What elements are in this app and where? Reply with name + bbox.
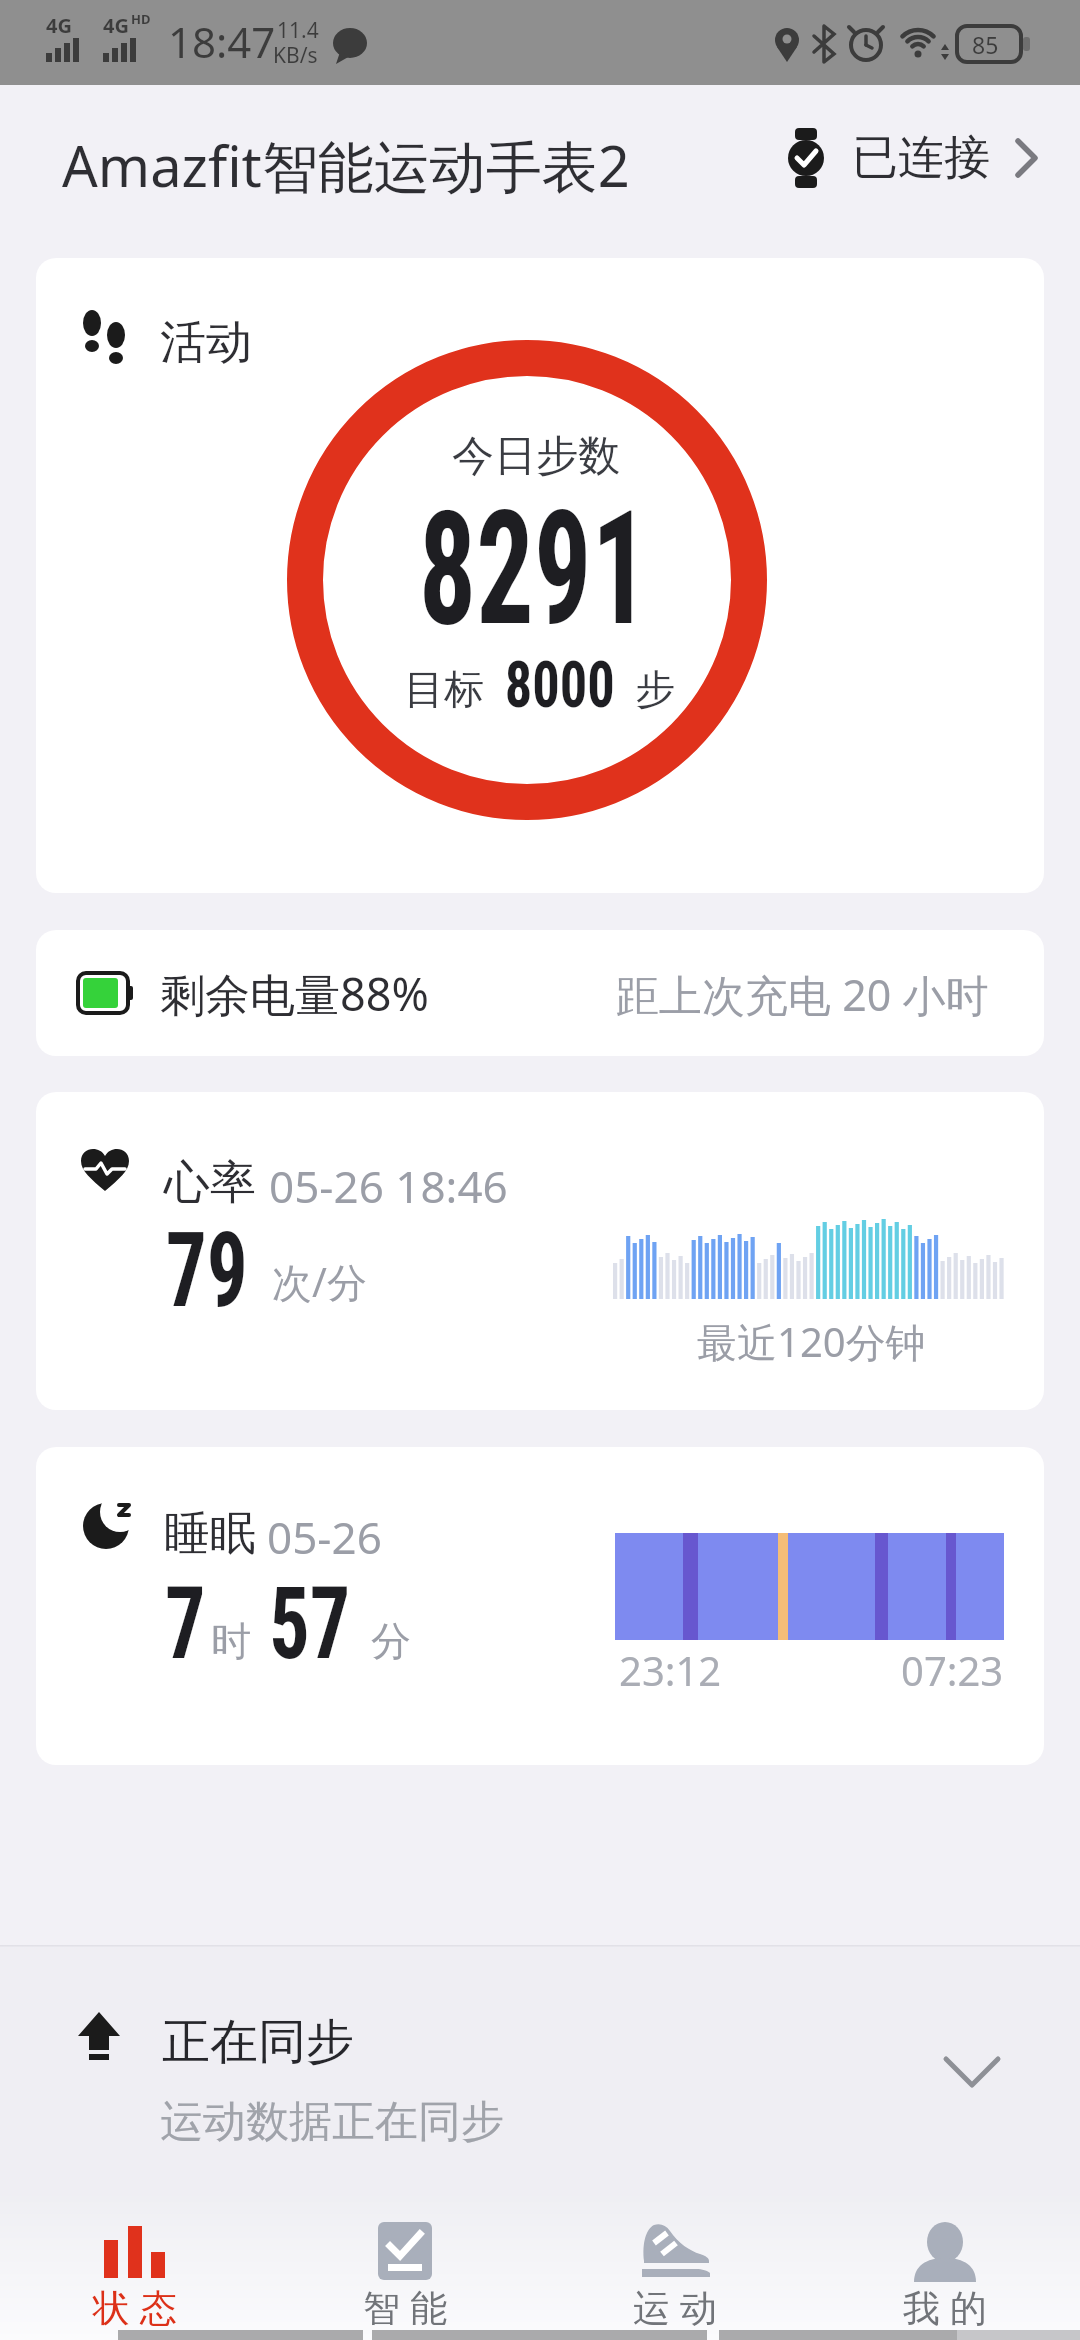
staticText: 次/分 <box>272 1254 367 1309</box>
button[interactable]: 睡眠 <box>36 1447 1044 1765</box>
staticText: 79 <box>166 1210 248 1332</box>
staticText: 运动 <box>628 2285 722 2332</box>
staticText: 分 <box>371 1616 411 1666</box>
staticText: 步 <box>625 660 676 715</box>
button[interactable]: 运动 <box>540 2196 810 2340</box>
button[interactable]: 已连接 <box>786 128 1040 188</box>
staticText: 状态 <box>88 2285 182 2332</box>
staticText: HD <box>131 10 151 28</box>
staticText: 8000 <box>505 648 615 723</box>
staticText: 今日步数 <box>452 430 620 483</box>
staticText: 活动 <box>160 314 252 372</box>
staticText: 4G <box>103 12 129 39</box>
button[interactable]: 剩余电量88% <box>36 930 1044 1056</box>
button[interactable]: 活动 <box>36 258 1044 893</box>
staticText: 时 <box>211 1616 251 1666</box>
staticText: 11.4 <box>277 16 319 45</box>
staticText: 运动数据正在同步 <box>160 2095 504 2149</box>
staticText: 07:23 <box>901 1643 1004 1697</box>
staticText: 睡眠 <box>164 1505 256 1563</box>
staticText: 05-26 18:46 <box>269 1156 508 1216</box>
staticText: 7 <box>165 1565 206 1682</box>
staticText: 智能 <box>358 2285 452 2332</box>
staticText: Amazfit智能运动手表2 <box>62 127 630 203</box>
staticText: 距上次充电 20 小时 <box>616 965 989 1024</box>
button[interactable]: 我的 <box>810 2196 1080 2340</box>
button[interactable]: 状态 <box>0 2196 270 2340</box>
button[interactable]: 智能 <box>270 2196 540 2340</box>
staticText: 57 <box>269 1565 351 1682</box>
staticText: 23:12 <box>619 1643 722 1697</box>
staticText: 目标 <box>404 660 495 715</box>
staticText: 8291 <box>419 476 649 661</box>
staticText: 剩余电量88% <box>160 963 429 1024</box>
staticText: 4G <box>46 12 72 39</box>
staticText: 心率 <box>164 1154 256 1212</box>
staticText: 正在同步 <box>162 2012 354 2072</box>
staticText: 已连接 <box>852 129 990 187</box>
staticText: 18:47 <box>168 13 276 70</box>
button[interactable]: 心率 <box>36 1092 1044 1410</box>
staticText: 85 <box>972 29 999 60</box>
button[interactable]: 正在同步 <box>0 1945 1080 2196</box>
staticText: 最近120分钟 <box>697 1314 926 1369</box>
staticText: 我的 <box>898 2285 992 2332</box>
staticText: 05-26 <box>267 1507 382 1567</box>
staticText: KB/s <box>273 41 318 70</box>
